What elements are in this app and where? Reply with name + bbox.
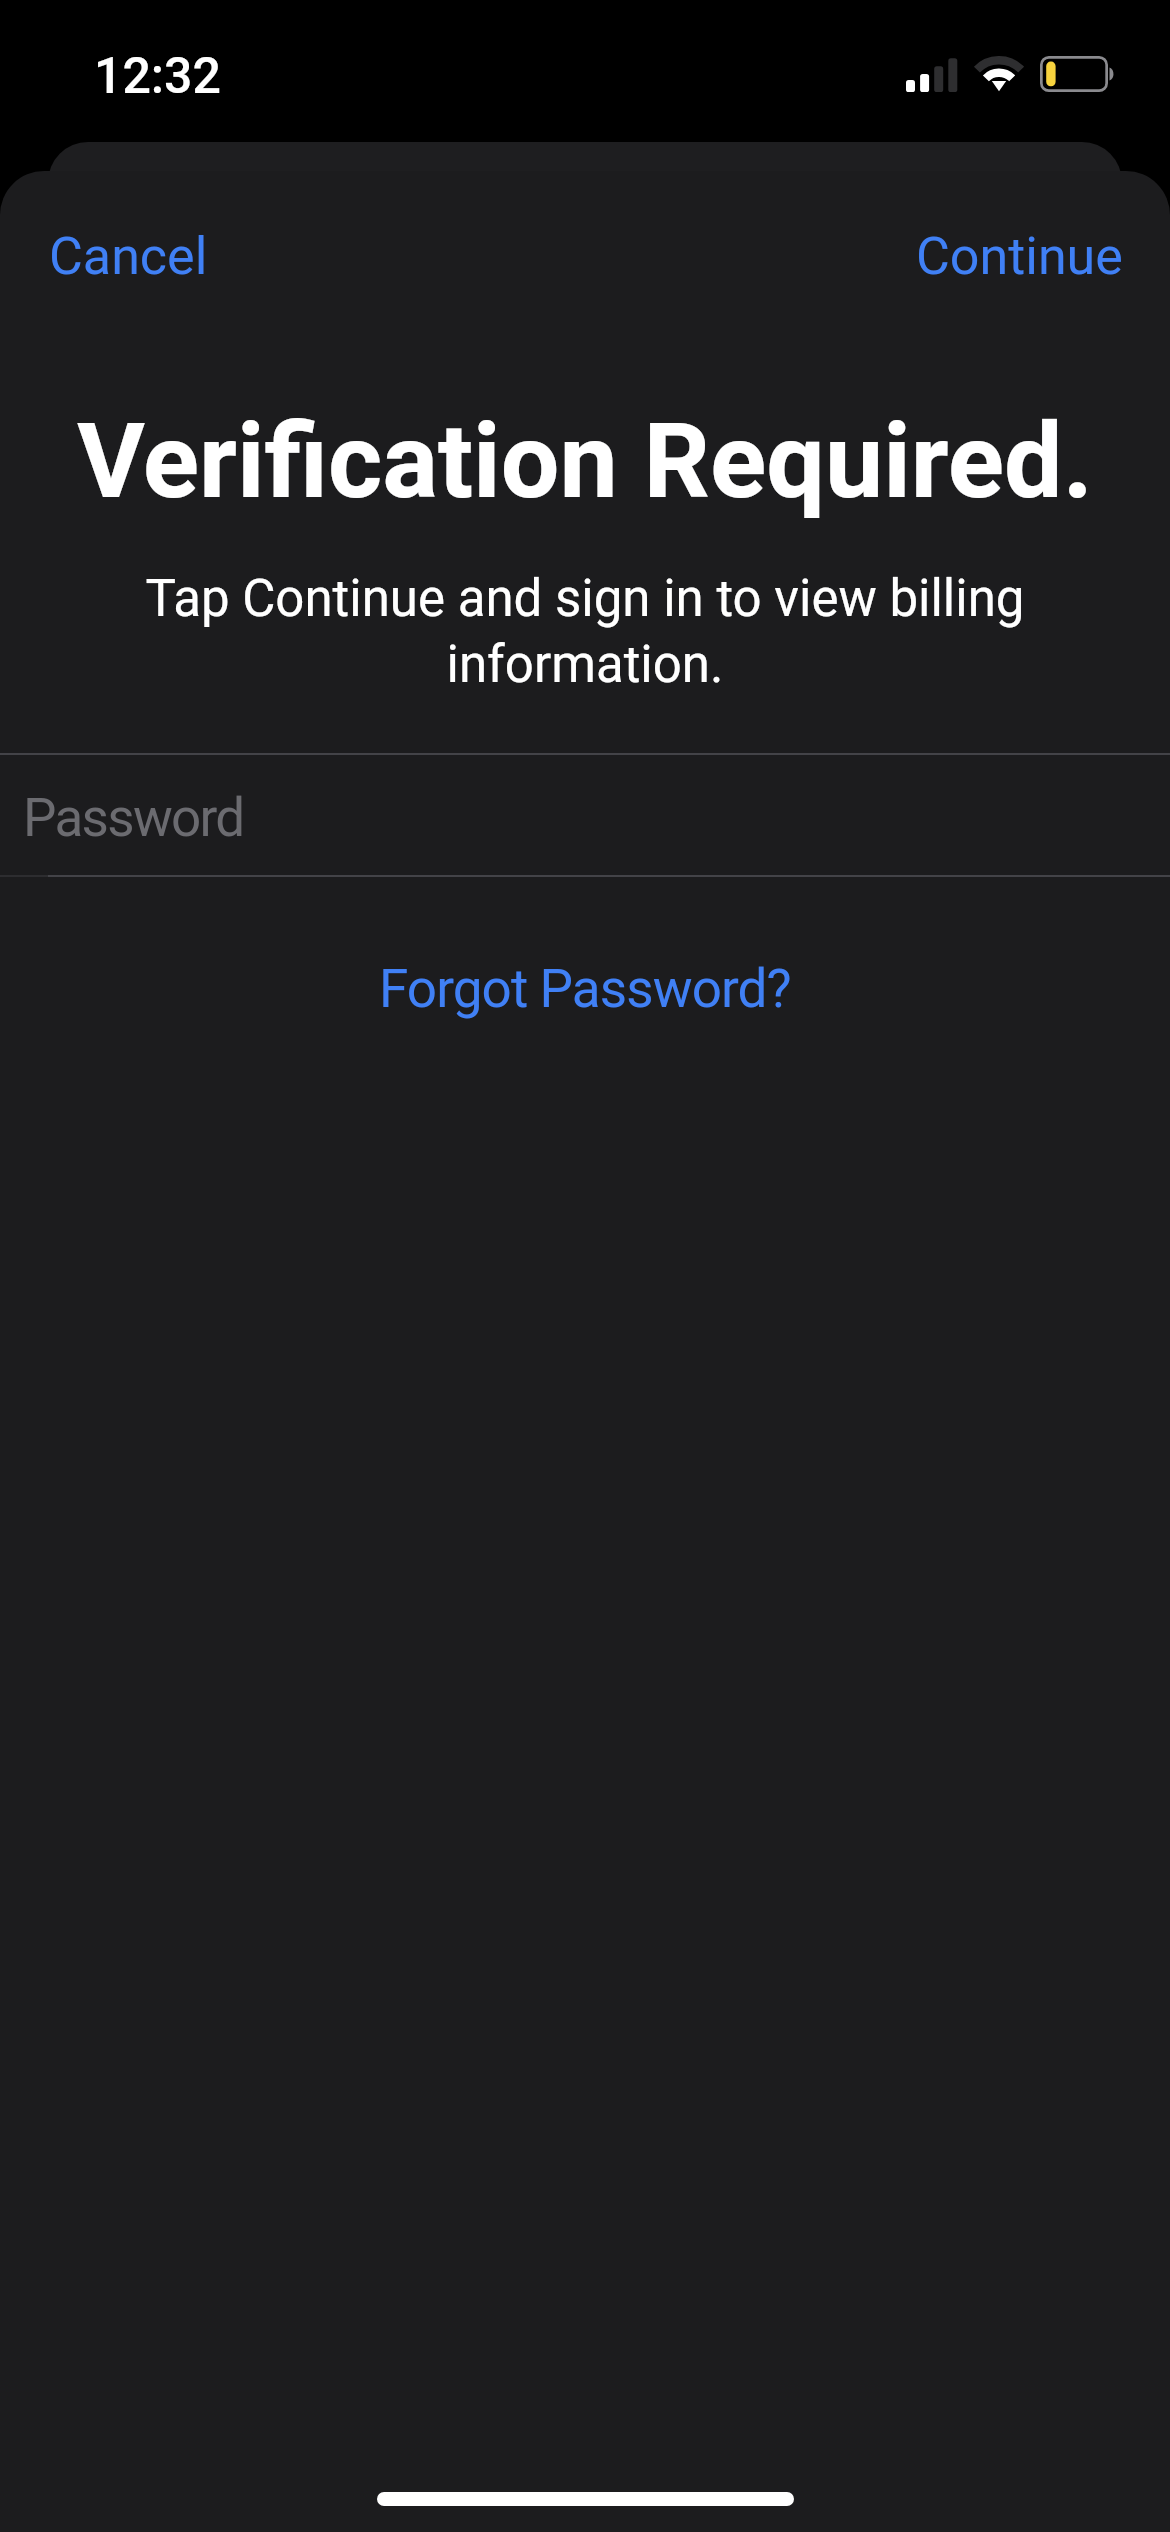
staticText: Forgot Password? <box>379 958 791 1020</box>
other: Cellular signal <box>906 55 959 92</box>
button[interactable]: Forgot Password? <box>339 942 831 1036</box>
button[interactable]: Password <box>0 754 1170 875</box>
staticText: 12:32 <box>94 47 221 106</box>
button[interactable]: Cancel <box>7 204 250 309</box>
staticText: Password <box>23 787 244 849</box>
staticText: Verification Required. <box>0 401 1170 523</box>
other: Wi-Fi <box>973 54 1025 93</box>
other: Battery <box>1040 56 1116 92</box>
staticText: Cancel <box>49 226 208 287</box>
staticText: Continue <box>916 226 1123 287</box>
button[interactable]: Continue <box>874 204 1165 309</box>
staticText: Tap Continue and sign in to view billing… <box>130 569 1040 695</box>
